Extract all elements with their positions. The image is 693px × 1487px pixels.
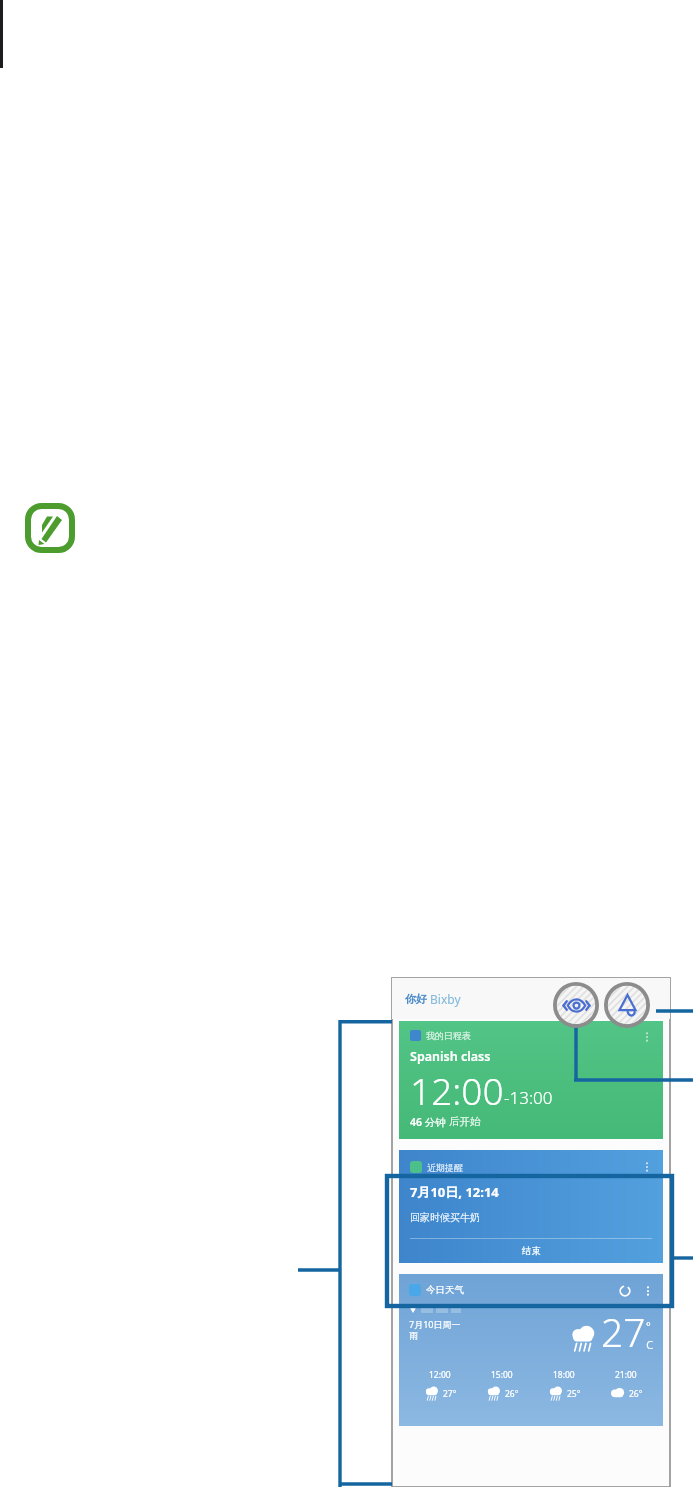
staticText: 46 分钟 (410, 1115, 449, 1129)
button[interactable]: More options (641, 1284, 655, 1298)
staticText: 27 (601, 1305, 646, 1358)
staticText: 26° (629, 1388, 643, 1400)
button[interactable]: 我的日程表 (399, 1021, 663, 1139)
button[interactable]: Refresh (618, 1284, 632, 1298)
staticText: 7月10日周一 (409, 1318, 461, 1330)
button[interactable]: Bixby Vision (553, 982, 599, 1028)
staticText: ° (646, 1318, 651, 1333)
staticText: 12:00 (429, 1369, 451, 1381)
staticText: 27° (443, 1388, 457, 1400)
staticText: 7月10日, 12:14 (410, 1183, 499, 1201)
staticText: 15:00 (491, 1369, 513, 1381)
staticText: 结束 (522, 1245, 541, 1257)
staticText: 后开始 (449, 1115, 481, 1128)
button[interactable]: 结束 (399, 1239, 663, 1263)
button[interactable]: 今日天气 (399, 1274, 663, 1426)
button[interactable]: More options (640, 1030, 654, 1044)
staticText: Spanish class (410, 1048, 491, 1065)
staticText: Bixby (430, 991, 461, 1007)
staticText: 雨 (409, 1330, 418, 1341)
staticText: -13:00 (504, 1086, 553, 1109)
button[interactable]: More options (640, 1160, 654, 1174)
staticText: 我的日程表 (426, 1030, 471, 1041)
staticText: 今日天气 (426, 1284, 464, 1296)
staticText: 25° (567, 1388, 581, 1400)
staticText: 26° (505, 1388, 519, 1400)
staticText: 18:00 (553, 1369, 575, 1381)
staticText: c (646, 1333, 654, 1353)
button[interactable]: Reminders (604, 982, 650, 1028)
button[interactable]: 近期提醒 (399, 1150, 663, 1263)
staticText: 近期提醒 (427, 1162, 463, 1173)
staticText: 21:00 (615, 1369, 637, 1381)
staticText: 你好 (405, 991, 430, 1006)
staticText: 12:00 (410, 1065, 504, 1115)
staticText: 回家时候买牛奶 (410, 1211, 480, 1224)
